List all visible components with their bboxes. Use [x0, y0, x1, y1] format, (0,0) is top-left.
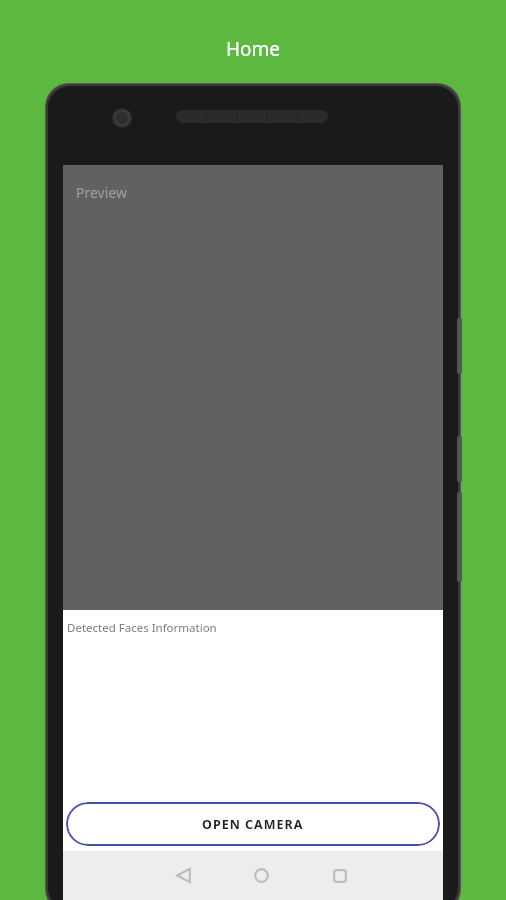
staticText: Home: [0, 36, 506, 900]
button[interactable]: OPEN CAMERA: [66, 802, 440, 846]
button[interactable]: Home: [234, 851, 288, 900]
button[interactable]: Recent apps: [313, 851, 367, 900]
staticText: Preview: [76, 183, 127, 202]
staticText: OPEN CAMERA: [202, 816, 304, 833]
staticText: Detected Faces Information: [67, 620, 217, 636]
button[interactable]: Back: [156, 851, 210, 900]
